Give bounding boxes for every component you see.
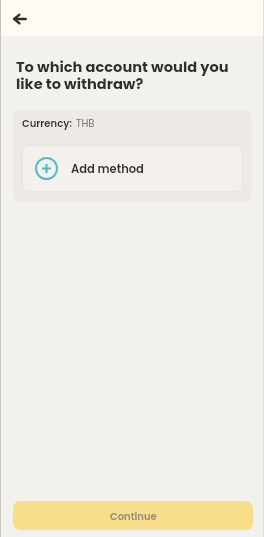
staticText: Currency: bbox=[22, 116, 72, 130]
button[interactable]: Continue bbox=[13, 501, 253, 530]
staticText: THB bbox=[76, 116, 95, 130]
staticText: To which account would you like to withd… bbox=[16, 57, 248, 95]
staticText: Add method bbox=[71, 161, 144, 177]
button[interactable]: Back bbox=[6, 5, 33, 32]
button[interactable]: Add method bbox=[22, 145, 243, 192]
staticText: Continue bbox=[110, 509, 157, 523]
